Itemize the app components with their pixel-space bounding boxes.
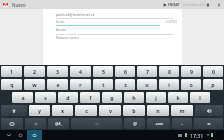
button[interactable]: u xyxy=(137,79,157,90)
staticText: Redactar correo xyxy=(56,36,79,40)
staticText: 6 xyxy=(124,68,127,75)
staticText: g xyxy=(110,94,114,101)
staticText: h xyxy=(132,94,136,101)
staticText: @ xyxy=(133,121,137,126)
staticText: 8 xyxy=(168,68,171,75)
staticText: Nuevo xyxy=(12,2,26,8)
button[interactable]: @ xyxy=(124,118,145,129)
staticText: j xyxy=(155,94,157,101)
staticText: 0 xyxy=(212,68,215,75)
button[interactable]: f xyxy=(80,92,100,103)
staticText: pavlicek@mobilenet xyxy=(183,3,209,7)
button[interactable]: d xyxy=(58,92,78,103)
button[interactable]: Attach file xyxy=(203,0,212,9)
staticText: 4 xyxy=(79,68,82,75)
staticText: c xyxy=(85,107,88,114)
button[interactable]: x xyxy=(52,105,73,116)
staticText: k xyxy=(176,94,180,101)
button[interactable]: k xyxy=(168,92,188,103)
button[interactable]: j xyxy=(146,92,166,103)
staticText: l xyxy=(199,94,201,101)
staticText: o xyxy=(189,81,193,88)
staticText: s xyxy=(44,94,47,101)
button[interactable]: z xyxy=(115,79,135,90)
staticText: Asunto xyxy=(56,28,66,32)
staticText: .com xyxy=(155,122,163,126)
button[interactable]: 5 xyxy=(93,66,113,77)
button[interactable]: v xyxy=(99,105,121,116)
button[interactable]: kbd xyxy=(1,118,23,129)
button[interactable]: 7 xyxy=(137,66,157,77)
button[interactable]: b xyxy=(123,105,145,116)
button[interactable]: l xyxy=(190,92,210,103)
button[interactable]: ENVIAR xyxy=(163,0,180,9)
button[interactable]: 3 xyxy=(47,66,68,77)
staticText: u xyxy=(145,81,149,88)
staticText: w xyxy=(32,81,37,88)
button[interactable]: Back xyxy=(2,130,15,140)
button[interactable]: .com xyxy=(147,118,170,129)
staticText: q xyxy=(10,81,14,88)
button[interactable]: del xyxy=(195,105,223,116)
staticText: 17:31 xyxy=(190,132,204,139)
staticText: n xyxy=(156,107,160,114)
button[interactable]: m xyxy=(171,105,193,116)
button[interactable]: e xyxy=(47,79,68,90)
button[interactable]: 6 xyxy=(115,66,135,77)
staticText: . xyxy=(181,121,183,126)
staticText: a xyxy=(21,94,25,101)
button[interactable]: 8 xyxy=(159,66,179,77)
staticText: 1 xyxy=(10,68,13,75)
button[interactable]: y xyxy=(29,105,50,116)
button[interactable]: 9 xyxy=(181,66,201,77)
button[interactable]: n xyxy=(147,105,169,116)
button[interactable]: Gmail xyxy=(1,0,10,9)
button[interactable]: More options xyxy=(214,0,223,9)
button[interactable]: globe xyxy=(25,118,46,129)
button[interactable]: r xyxy=(70,79,91,90)
button[interactable]: enter xyxy=(194,118,223,129)
staticText: r xyxy=(79,81,82,88)
staticText: t xyxy=(102,81,105,88)
staticText: p xyxy=(211,81,215,88)
button[interactable]: i xyxy=(159,79,179,90)
staticText: 3 xyxy=(56,68,59,75)
button[interactable]: h xyxy=(124,92,144,103)
button[interactable]: o xyxy=(181,79,201,90)
staticText: f xyxy=(89,94,92,101)
button[interactable]: Home xyxy=(14,130,27,140)
button[interactable]: 4 xyxy=(70,66,91,77)
button[interactable]: a xyxy=(12,92,33,103)
button[interactable]: 1 xyxy=(1,66,22,77)
button[interactable]: q xyxy=(1,79,22,90)
button[interactable]: s xyxy=(35,92,56,103)
staticText: ENVIAR xyxy=(168,3,180,7)
staticText: 7 xyxy=(146,68,149,75)
button[interactable]: w xyxy=(24,79,45,90)
button[interactable]: g xyxy=(102,92,122,103)
staticText: b xyxy=(132,107,136,114)
staticText: z xyxy=(124,81,127,88)
staticText: i xyxy=(168,81,170,88)
button[interactable]: shift xyxy=(1,105,27,116)
button[interactable]: Recent apps xyxy=(27,130,42,140)
staticText: 9 xyxy=(190,68,193,75)
button[interactable]: p xyxy=(203,79,223,90)
staticText: + CC/CCO xyxy=(165,20,177,24)
button[interactable]: @#_ xyxy=(48,118,69,129)
staticText: d xyxy=(66,94,70,101)
button[interactable]: t xyxy=(93,79,113,90)
button[interactable]: . xyxy=(172,118,192,129)
staticText: 5 xyxy=(102,68,105,75)
staticText: x xyxy=(61,107,64,114)
button[interactable]: c xyxy=(75,105,97,116)
staticText: y xyxy=(38,107,41,114)
staticText: m xyxy=(179,107,185,114)
button[interactable]: 2 xyxy=(24,66,45,77)
staticText: e xyxy=(56,81,60,88)
staticText: pavlicek@mobilenet.cz xyxy=(56,12,95,17)
staticText: 2 xyxy=(33,68,36,75)
button[interactable]: 0 xyxy=(203,66,223,77)
button[interactable]: space xyxy=(71,118,122,129)
staticText: v xyxy=(109,107,112,114)
